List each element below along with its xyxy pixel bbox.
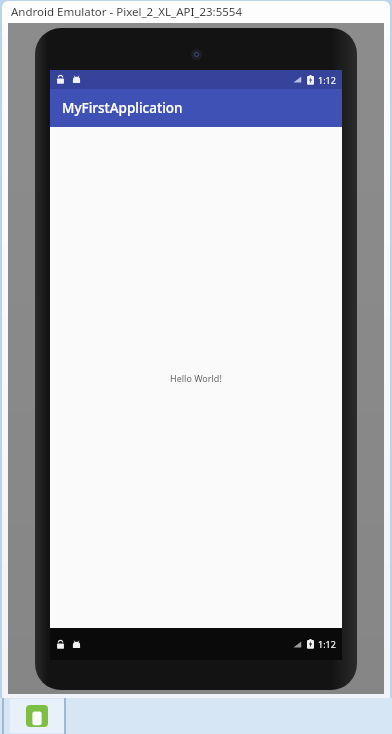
- button[interactable]: Android Emulator - Pixel_2_XL_API_23:555…: [2, 1, 390, 23]
- staticText: 1:12: [318, 74, 336, 86]
- button[interactable]: Android Emulator taskbar item: [10, 699, 64, 733]
- staticText: Android Emulator - Pixel_2_XL_API_23:555…: [11, 4, 242, 20]
- staticText: MyFirstApplication: [62, 99, 183, 117]
- staticText: Hello World!: [170, 372, 222, 384]
- staticText: 1:12: [318, 638, 336, 650]
- button[interactable]: MyFirstApplication: [50, 89, 342, 127]
